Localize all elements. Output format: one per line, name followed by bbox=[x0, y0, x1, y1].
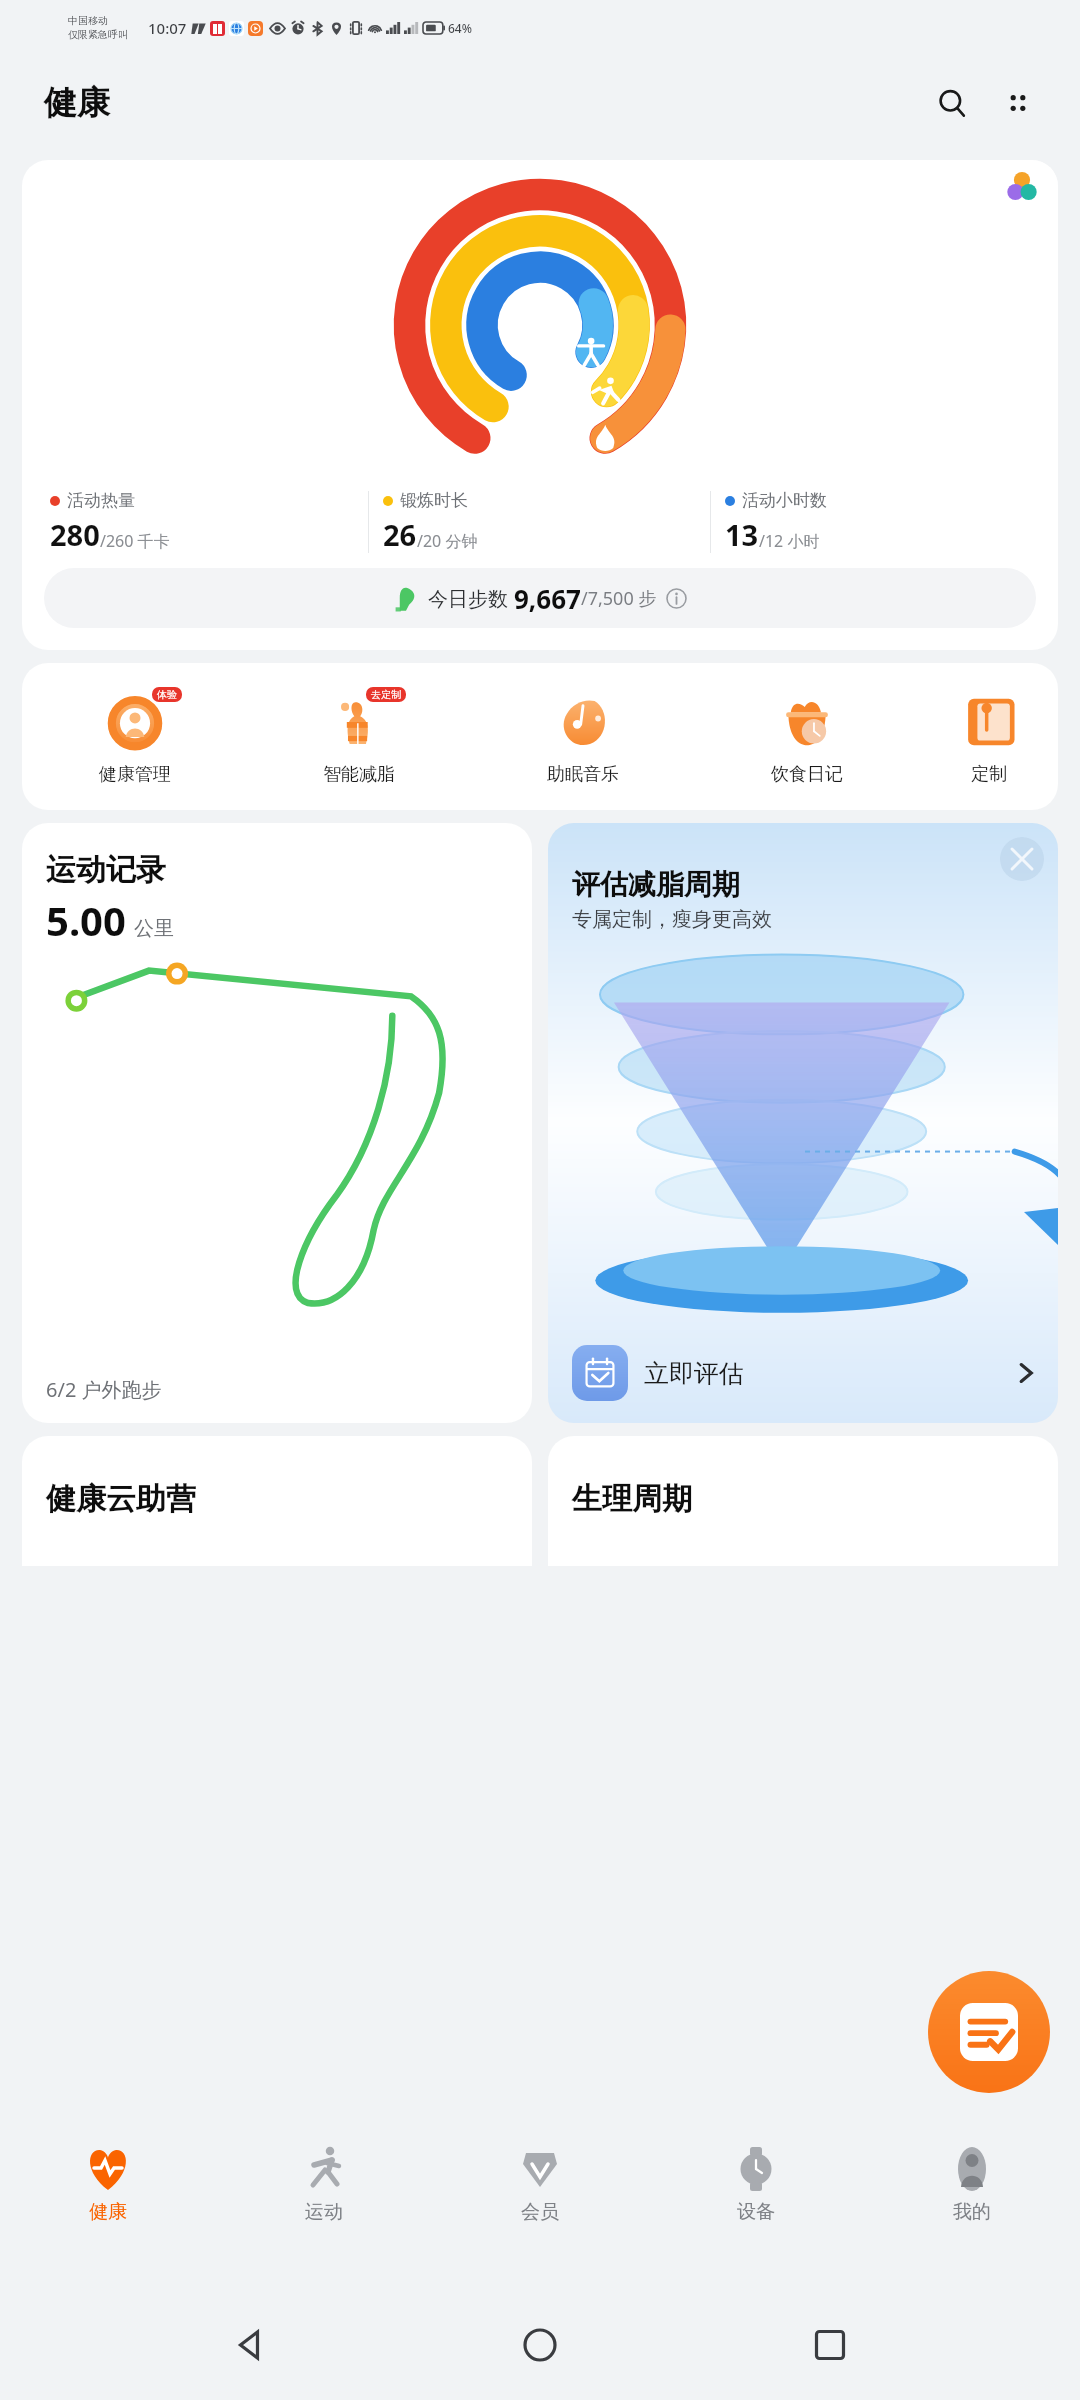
staticText: 定制 bbox=[971, 763, 1007, 786]
button[interactable]: 我的 bbox=[864, 2144, 1080, 2290]
staticText: 64% bbox=[448, 20, 472, 36]
button[interactable]: 今日步数 bbox=[44, 568, 1036, 628]
staticText: 仅限紧急呼叫 bbox=[68, 28, 128, 41]
button[interactable]: 评估减脂周期 bbox=[548, 823, 1058, 1423]
button[interactable]: 运动 bbox=[216, 2144, 432, 2290]
staticText: 5.00 bbox=[46, 893, 126, 947]
button[interactable]: Add record bbox=[928, 1971, 1050, 2093]
staticText: 评估减脂周期 bbox=[572, 867, 740, 902]
button[interactable]: 健康云助营 bbox=[22, 1436, 532, 1566]
staticText: 6/2 户外跑步 bbox=[46, 1376, 162, 1403]
staticText: 体验 bbox=[157, 688, 177, 701]
staticText: 26 bbox=[383, 515, 417, 554]
button[interactable]: Search bbox=[926, 77, 978, 129]
staticText: 公里 bbox=[134, 916, 174, 941]
button[interactable]: More options bbox=[992, 77, 1044, 129]
staticText: 去定制 bbox=[371, 688, 401, 701]
staticText: 立即评估 bbox=[644, 1358, 744, 1389]
button[interactable]: 活动热量 bbox=[22, 160, 1058, 650]
staticText: 设备 bbox=[737, 2200, 775, 2224]
staticText: 中国移动 bbox=[68, 14, 108, 27]
staticText: 运动记录 bbox=[46, 851, 166, 889]
staticText: 活动热量 bbox=[67, 490, 135, 511]
button[interactable]: 定制 bbox=[919, 689, 1058, 786]
button[interactable]: 饮食日记 bbox=[695, 689, 919, 786]
staticText: 健康 bbox=[44, 82, 110, 124]
staticText: 280 bbox=[50, 515, 100, 554]
staticText: 智能减脂 bbox=[323, 763, 395, 786]
staticText: 今日步数 bbox=[428, 585, 514, 612]
button[interactable]: 活动热量 bbox=[50, 490, 368, 554]
staticText: 我的 bbox=[953, 2200, 991, 2224]
button[interactable]: Close bbox=[1000, 837, 1044, 881]
staticText: 锻炼时长 bbox=[400, 490, 468, 511]
button[interactable]: 运动记录 bbox=[22, 823, 532, 1423]
staticText: 饮食日记 bbox=[771, 763, 843, 786]
staticText: 健康云助营 bbox=[46, 1480, 196, 1518]
staticText: /7,500 步 bbox=[581, 586, 657, 611]
staticText: 9,667 bbox=[514, 581, 581, 616]
staticText: 健康管理 bbox=[99, 763, 171, 786]
button[interactable]: 生理周期 bbox=[548, 1436, 1058, 1566]
staticText: 13 bbox=[725, 515, 759, 554]
button[interactable]: 助眠音乐 bbox=[471, 689, 695, 786]
staticText: 会员 bbox=[521, 2200, 559, 2224]
staticText: 10:07 bbox=[148, 18, 187, 38]
button[interactable]: 体验 bbox=[22, 689, 247, 786]
button[interactable]: 锻炼时长 bbox=[383, 490, 710, 554]
staticText: 助眠音乐 bbox=[547, 763, 619, 786]
staticText: 活动小时数 bbox=[742, 490, 827, 511]
staticText: 运动 bbox=[305, 2200, 343, 2224]
button[interactable] bbox=[986, 160, 1058, 212]
button[interactable]: 设备 bbox=[648, 2144, 864, 2290]
staticText: /12 小时 bbox=[759, 530, 820, 552]
staticText: 健康 bbox=[89, 2200, 127, 2224]
staticText: 专属定制，瘦身更高效 bbox=[572, 907, 772, 932]
staticText: /20 分钟 bbox=[417, 530, 478, 552]
staticText: /260 千卡 bbox=[100, 530, 170, 552]
button[interactable]: Recents bbox=[790, 2305, 870, 2385]
button[interactable]: 会员 bbox=[432, 2144, 648, 2290]
button[interactable]: 健康 bbox=[0, 2144, 216, 2290]
button[interactable]: Home bbox=[500, 2305, 580, 2385]
staticText: 生理周期 bbox=[572, 1480, 692, 1518]
button[interactable]: 去定制 bbox=[247, 689, 471, 786]
button[interactable]: Back bbox=[210, 2305, 290, 2385]
button[interactable]: 活动小时数 bbox=[725, 490, 1052, 554]
